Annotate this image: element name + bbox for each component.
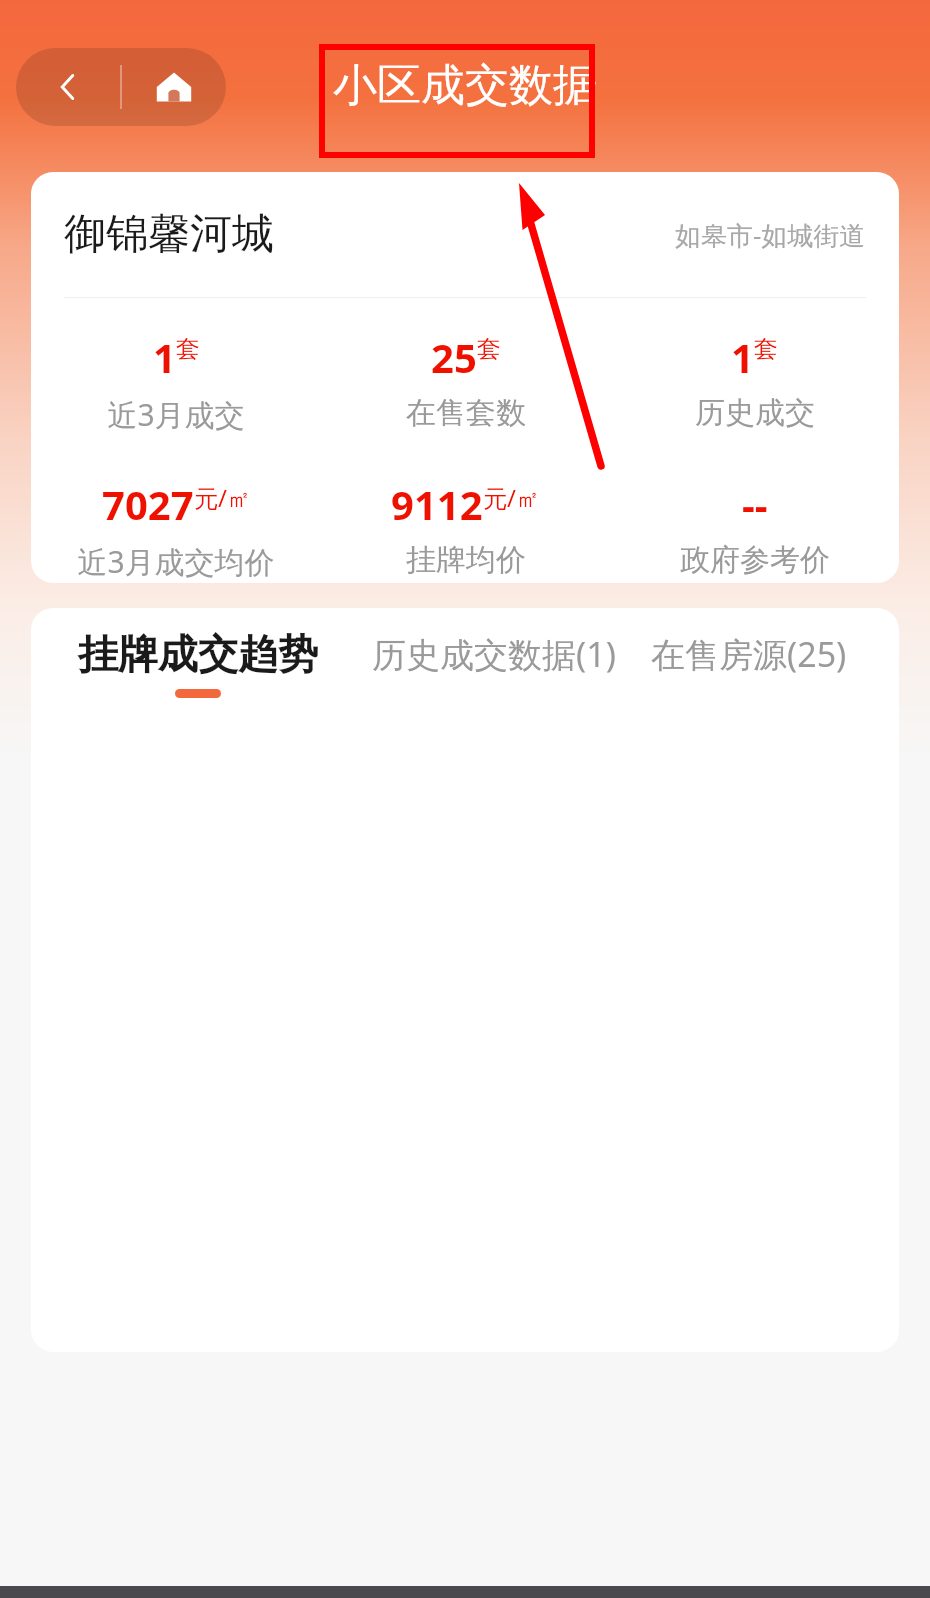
button[interactable]: 在售房源(25) — [651, 627, 847, 700]
button[interactable]: 7027 — [31, 477, 321, 582]
staticText: 25 — [431, 330, 477, 384]
staticText: 7027 — [102, 477, 194, 531]
staticText: 历史成交数据(1) — [372, 631, 616, 677]
staticText: 套 — [477, 334, 501, 364]
staticText: 近3月成交均价 — [77, 541, 275, 582]
button[interactable]: 9112 — [321, 477, 610, 579]
staticText: 政府参考价 — [680, 541, 830, 579]
staticText: 如皋市-如城街道 — [675, 217, 866, 253]
button[interactable]: 挂牌成交趋势 — [78, 625, 318, 702]
staticText: 9112 — [391, 477, 483, 531]
staticText: 元/㎡ — [483, 481, 540, 514]
staticText: 1 — [731, 330, 754, 384]
staticText: 元/㎡ — [194, 481, 251, 514]
button[interactable]: -- — [610, 477, 899, 579]
button[interactable]: Back — [16, 48, 120, 126]
staticText: 在售房源(25) — [651, 631, 847, 677]
staticText: 挂牌均价 — [406, 541, 526, 579]
button[interactable]: 历史成交数据(1) — [372, 627, 616, 700]
staticText: 1 — [153, 330, 176, 384]
staticText: -- — [742, 477, 768, 531]
button[interactable]: 1 — [610, 330, 899, 432]
staticText: 小区成交数据 — [333, 58, 597, 113]
button[interactable]: Home — [122, 48, 226, 126]
button[interactable]: 25 — [321, 330, 610, 432]
staticText: 套 — [754, 334, 778, 364]
staticText: 挂牌成交趋势 — [78, 629, 318, 679]
staticText: 历史成交 — [695, 394, 815, 432]
staticText: 近3月成交 — [107, 394, 245, 435]
staticText: 套 — [176, 334, 200, 364]
staticText: 御锦馨河城 — [64, 208, 274, 261]
button[interactable]: 1 — [31, 330, 321, 435]
staticText: 在售套数 — [406, 394, 526, 432]
